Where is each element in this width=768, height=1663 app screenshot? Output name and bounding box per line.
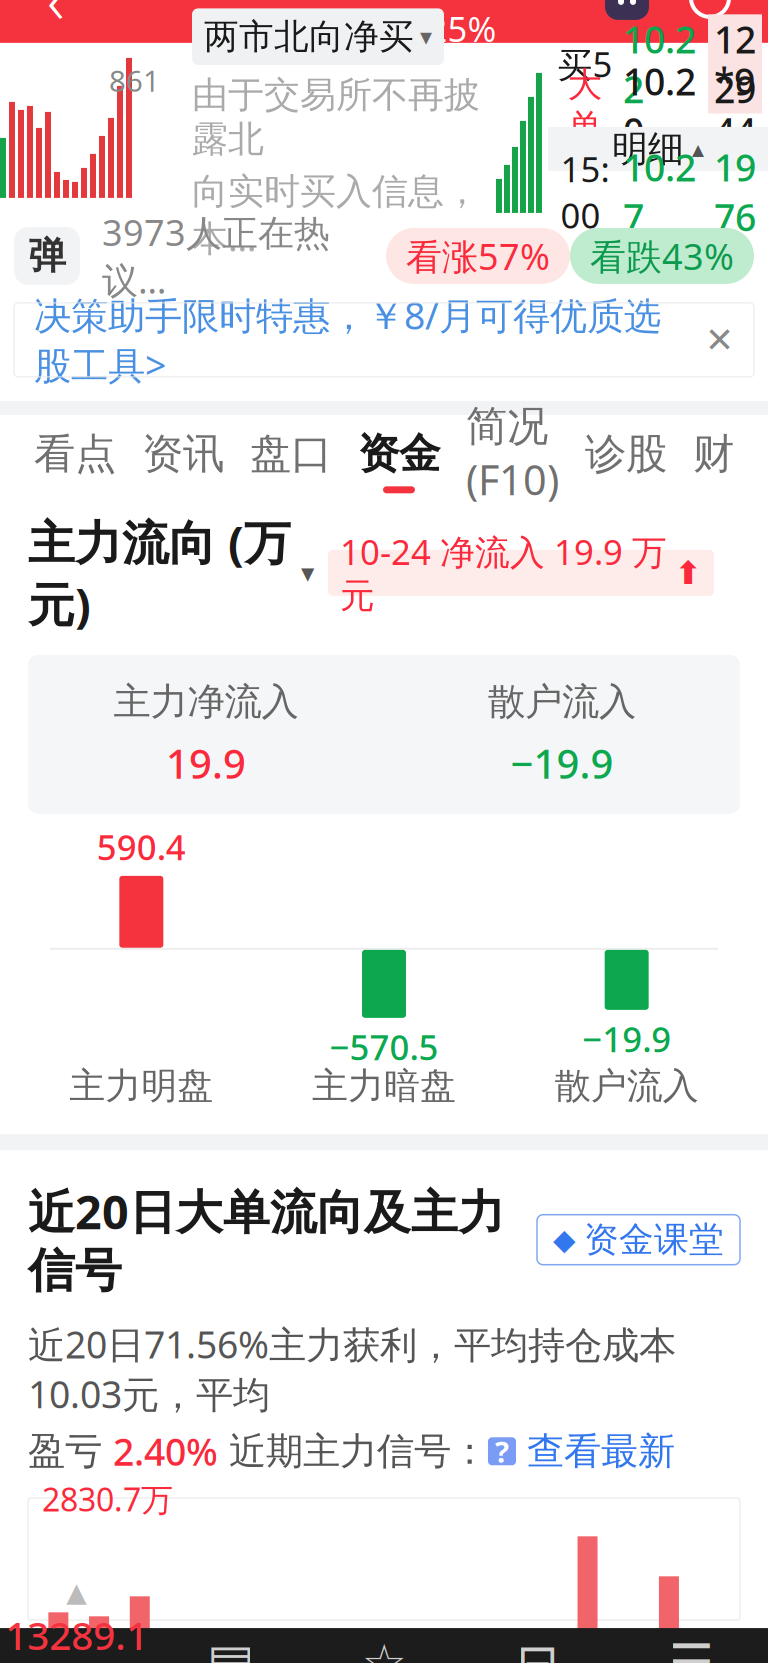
staticText: 10.20 xyxy=(623,56,696,155)
staticText: 13289.18 xyxy=(5,1609,148,1663)
button[interactable]: 财 xyxy=(680,428,747,493)
staticText: ▴ xyxy=(692,135,704,162)
staticText: 861 xyxy=(109,61,160,100)
staticText: 1229 xyxy=(714,14,756,113)
staticText: 资讯 xyxy=(142,428,224,479)
button[interactable]: ☰ xyxy=(614,1634,768,1663)
button[interactable]: ▲ xyxy=(0,1577,154,1663)
button[interactable]: 主力流向 (万元) xyxy=(28,511,314,635)
staticText: 近期主力信号： xyxy=(218,1428,488,1474)
button[interactable]: 查看最新 xyxy=(516,1428,675,1474)
staticText: 看点 xyxy=(34,428,116,479)
staticText: 主力净流入 xyxy=(113,679,298,725)
staticText: *944 xyxy=(714,56,756,155)
button[interactable]: 看点 xyxy=(21,428,129,493)
staticText: 弹 xyxy=(28,233,65,279)
staticText: 查看最新 xyxy=(516,1428,675,1474)
button[interactable]: 资讯 xyxy=(129,428,237,493)
staticText: ▤ xyxy=(206,1634,254,1663)
staticText: 资金课堂 xyxy=(584,1218,724,1261)
staticText: 盈亏 xyxy=(28,1428,113,1474)
button[interactable]: 决策助手限时特惠，￥8/月可得优质选股工具> xyxy=(14,303,754,377)
staticText: 散户流入 xyxy=(488,679,636,725)
staticText: 15:00 xyxy=(560,146,609,238)
staticText: 近20日71.56%主力获利，平均持仓成本10.03元，平均 xyxy=(28,1319,676,1418)
staticText: ? xyxy=(495,1432,509,1471)
button[interactable]: 弹幕 xyxy=(14,227,80,285)
staticText: 资金 xyxy=(358,428,440,479)
button[interactable]: 搜索 xyxy=(666,0,754,38)
staticText: 散户流入 xyxy=(555,1064,699,1108)
staticText: 10.27 xyxy=(623,142,696,241)
staticText: 看涨57% xyxy=(406,232,550,280)
button[interactable]: ☆ xyxy=(307,1634,461,1663)
button[interactable]: ◆ xyxy=(537,1215,740,1265)
button[interactable]: 盘口 xyxy=(237,428,345,493)
staticText: ☆ xyxy=(361,1634,406,1663)
staticText: 买5 xyxy=(557,41,612,87)
staticText: 看跌43% xyxy=(590,232,734,280)
staticText: 2830.7万 xyxy=(42,1478,173,1520)
staticText: 10.22 xyxy=(623,14,696,113)
button[interactable]: 看涨57% xyxy=(386,228,570,284)
staticText: 决策助手限时特惠，￥8/月可得优质选股工具> xyxy=(34,290,661,389)
staticText: 由于交易所不再披露北 xyxy=(192,73,480,161)
staticText: ▾ xyxy=(301,558,314,588)
button[interactable]: 两市北向净买 xyxy=(192,8,444,65)
button[interactable]: 帮助 xyxy=(488,1437,516,1465)
button[interactable]: ▤ xyxy=(154,1634,307,1663)
staticText: 主力暗盘 xyxy=(312,1064,456,1108)
staticText: 大单 xyxy=(567,63,602,148)
staticText: 明细 xyxy=(612,127,684,171)
staticText: 简况(F10) xyxy=(466,401,559,507)
staticText: ◆ xyxy=(553,1223,576,1256)
staticText: ‹ xyxy=(47,0,65,42)
staticText: 财 xyxy=(693,428,734,479)
staticText: 590.4 xyxy=(97,824,186,870)
staticText: −19.9 xyxy=(510,737,613,790)
staticText: 主力明盘 xyxy=(69,1064,213,1108)
staticText: 诊股 xyxy=(585,428,667,479)
staticText: ☰ xyxy=(669,1634,714,1663)
button[interactable]: 智能助手 xyxy=(588,0,666,38)
staticText: ⊟ xyxy=(517,1634,559,1663)
staticText: 主力流向 (万元) xyxy=(28,511,291,635)
staticText: ✕ xyxy=(705,320,734,359)
button[interactable]: 返回 xyxy=(14,0,98,38)
button[interactable]: 看跌43% xyxy=(570,228,754,284)
staticText: 10.27 −1.25% xyxy=(271,6,496,52)
button[interactable]: 资金 xyxy=(345,428,453,493)
staticText: −570.5 xyxy=(329,1024,438,1070)
staticText: 19.9 xyxy=(166,737,246,790)
button[interactable]: 简况(F10) xyxy=(453,401,572,521)
staticText: 10-24 净流入 19.9 万元 xyxy=(340,529,667,617)
staticText: 向实时买入信息，本… xyxy=(192,169,480,261)
button[interactable]: 3973人正在热议… xyxy=(80,208,330,304)
button[interactable]: 诊股 xyxy=(572,428,680,493)
staticText: 近20日大单流向及主力信号 xyxy=(28,1180,505,1299)
staticText: −19.9 xyxy=(582,1016,671,1062)
staticText: 盘口 xyxy=(250,428,332,479)
button[interactable]: ⊟ xyxy=(461,1634,614,1663)
staticText: 两市北向净买 xyxy=(204,15,414,58)
staticText: ▲ xyxy=(66,1577,87,1607)
staticText: ▾ xyxy=(420,23,432,50)
staticText: 3973人正在热议… xyxy=(102,208,330,304)
staticText: 2.40% xyxy=(113,1426,218,1476)
staticText: ⬆ xyxy=(675,555,702,591)
staticText: 1976 xyxy=(714,142,756,241)
